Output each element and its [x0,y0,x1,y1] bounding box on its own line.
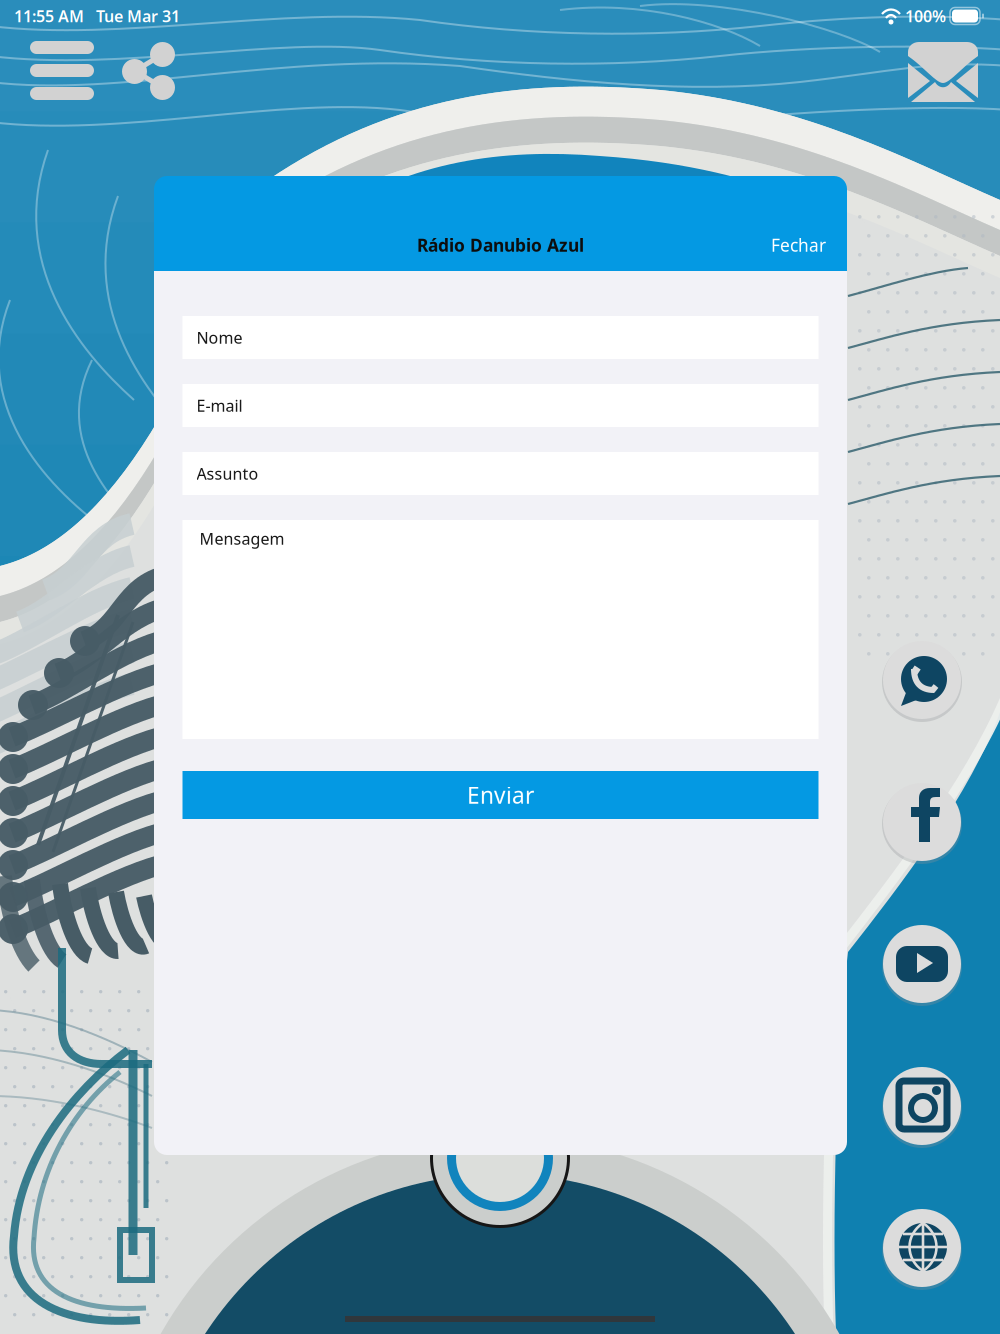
button[interactable]: E-mail [182,384,818,427]
staticText: Tue Mar 31 [84,5,180,27]
staticText: Rádio Danubio Azul [417,233,584,256]
button[interactable]: Nome [182,316,818,359]
button[interactable]: Instagram [882,1064,962,1148]
button[interactable]: Email [902,41,984,103]
staticText: Fechar [771,233,826,256]
staticText: E-mail [196,395,242,416]
button[interactable]: Mensagem [182,520,818,739]
button[interactable]: WhatsApp [882,638,962,722]
staticText: Enviar [467,780,534,810]
staticText: Assunto [196,463,258,484]
button[interactable]: Assunto [182,452,818,495]
button[interactable]: Share [122,41,192,103]
staticText: Nome [196,327,242,348]
button[interactable]: Enviar [182,771,818,819]
staticText: 11:55 AM [14,5,84,27]
button[interactable]: Fechar [771,219,847,271]
button[interactable]: Website [882,1206,962,1290]
button[interactable]: Facebook [882,780,962,864]
staticText: 100% [901,5,950,27]
button[interactable]: YouTube [882,922,962,1006]
button[interactable]: Menu [24,41,100,103]
staticText: Mensagem [199,528,284,549]
